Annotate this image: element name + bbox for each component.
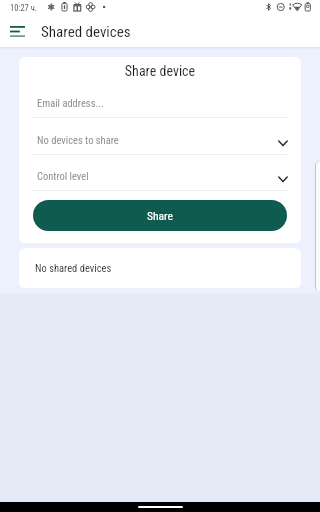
staticText: Shared devices xyxy=(41,23,131,41)
button[interactable]: Share xyxy=(33,200,287,231)
button[interactable]: Control level xyxy=(32,158,289,194)
staticText: Share xyxy=(147,209,173,222)
staticText: No shared devices xyxy=(35,262,112,274)
button[interactable]: Email address... xyxy=(32,90,288,115)
button[interactable]: No devices to share xyxy=(32,122,289,158)
staticText: 10:27 ч. xyxy=(10,3,38,13)
button[interactable]: Open navigation menu xyxy=(0,14,34,48)
staticText: Email address... xyxy=(37,97,104,109)
button[interactable]: No shared devices xyxy=(19,248,301,288)
staticText: No devices to share xyxy=(37,134,284,146)
staticText: Share device xyxy=(19,63,301,79)
staticText: Control level xyxy=(37,170,284,182)
